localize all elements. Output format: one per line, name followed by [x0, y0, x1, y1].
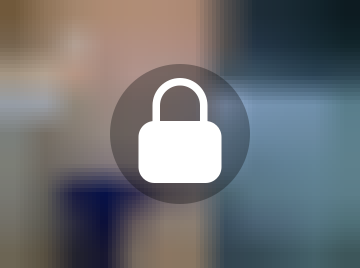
- button[interactable]: Locked: [110, 64, 250, 204]
